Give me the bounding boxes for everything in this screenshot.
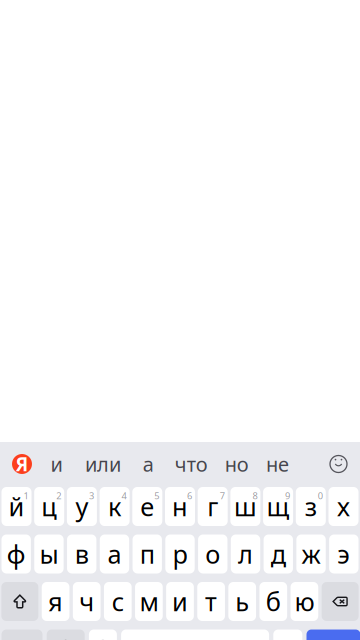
staticText: что	[175, 451, 208, 477]
button[interactable]: или	[85, 442, 121, 486]
staticText: 8	[252, 489, 257, 502]
button[interactable]: д	[264, 534, 293, 573]
staticText: я	[48, 585, 63, 618]
button[interactable]: р	[165, 534, 195, 573]
button[interactable]: г	[198, 487, 228, 526]
staticText: 7	[220, 489, 225, 502]
staticText: й	[8, 490, 24, 523]
staticText: не	[266, 451, 289, 477]
button[interactable]: и	[166, 582, 194, 621]
button[interactable]: щ	[263, 487, 293, 526]
button[interactable]: Emoji	[89, 629, 117, 640]
staticText: 4	[122, 489, 127, 502]
staticText: 3	[89, 489, 94, 502]
button[interactable]: ф	[1, 534, 31, 573]
button[interactable]: что	[175, 442, 208, 486]
button[interactable]: я	[42, 582, 69, 621]
staticText: 6	[187, 489, 192, 502]
staticText: Я	[15, 452, 28, 476]
button[interactable]: е	[132, 487, 162, 526]
button[interactable]: но	[225, 442, 249, 486]
button[interactable]: ц	[34, 487, 64, 526]
staticText: но	[225, 451, 249, 477]
staticText: 0	[318, 489, 323, 502]
button[interactable]: ж	[296, 534, 326, 573]
staticText: д	[271, 537, 286, 571]
staticText: ц	[41, 490, 57, 523]
button[interactable]: к	[100, 487, 130, 526]
button[interactable]: т	[197, 582, 225, 621]
button[interactable]: п	[133, 534, 162, 573]
staticText: з	[305, 490, 317, 523]
staticText: п	[140, 537, 155, 571]
staticText: ч	[79, 585, 94, 618]
staticText: ш	[234, 490, 257, 523]
staticText: а	[143, 451, 154, 477]
staticText: ю	[294, 585, 314, 618]
staticText: или	[85, 451, 121, 477]
button[interactable]: з	[296, 487, 326, 526]
staticText: н	[172, 490, 188, 523]
button[interactable]: ю	[291, 582, 318, 621]
staticText: э	[337, 537, 350, 571]
button[interactable]: Emoji	[318, 442, 358, 486]
button[interactable]: и	[50, 442, 62, 486]
staticText: е	[140, 490, 154, 523]
button[interactable]: с	[104, 582, 132, 621]
button[interactable]: э	[329, 534, 358, 573]
staticText: ф	[7, 537, 26, 571]
staticText: у	[75, 490, 88, 523]
staticText: л	[238, 537, 253, 571]
button[interactable]: а	[100, 534, 129, 573]
staticText: 9	[285, 489, 290, 502]
button[interactable]: Backspace	[322, 582, 359, 621]
button[interactable]: а	[143, 442, 154, 486]
staticText: с	[112, 585, 124, 618]
button[interactable]: ч	[73, 582, 101, 621]
staticText: г	[207, 490, 218, 523]
button[interactable]: ш	[230, 487, 260, 526]
staticText: т	[205, 585, 217, 618]
button[interactable]: Return	[306, 629, 360, 640]
staticText: 2	[56, 489, 61, 502]
button[interactable]: б	[259, 582, 287, 621]
staticText: б	[266, 585, 281, 618]
button[interactable]: .	[273, 629, 302, 640]
staticText: м	[139, 585, 158, 618]
staticText: х	[337, 490, 350, 523]
staticText: и	[50, 451, 62, 477]
button[interactable]: х	[328, 487, 358, 526]
button[interactable]: Yandex	[0, 442, 44, 486]
button[interactable]: н	[165, 487, 195, 526]
staticText: ь	[235, 585, 249, 618]
staticText: и	[172, 585, 188, 618]
button[interactable]: о	[198, 534, 227, 573]
button[interactable]: л	[231, 534, 260, 573]
button[interactable]: м	[135, 582, 163, 621]
staticText: 1	[23, 489, 28, 502]
button[interactable]: в	[67, 534, 96, 573]
staticText: о	[205, 537, 220, 571]
button[interactable]: ы	[34, 534, 64, 573]
staticText: р	[172, 537, 187, 571]
button[interactable]: у	[67, 487, 97, 526]
staticText: к	[108, 490, 121, 523]
staticText: ы	[39, 537, 58, 571]
staticText: в	[75, 537, 89, 571]
staticText: щ	[267, 490, 290, 523]
button[interactable]: й	[1, 487, 31, 526]
staticText: а	[107, 537, 121, 571]
button[interactable]: ь	[228, 582, 256, 621]
staticText: 5	[154, 489, 159, 502]
button[interactable]: Shift	[1, 582, 38, 621]
button[interactable]: не	[266, 442, 289, 486]
staticText: ж	[302, 537, 321, 571]
